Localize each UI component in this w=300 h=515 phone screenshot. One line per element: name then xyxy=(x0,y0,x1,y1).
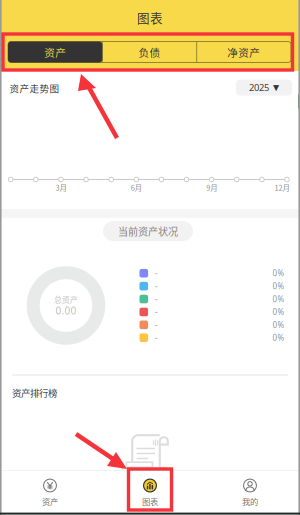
staticText: 资产排行榜 xyxy=(12,386,57,399)
staticText: 0% xyxy=(272,281,284,292)
staticText: 3月 xyxy=(55,182,66,193)
staticText: ▼ xyxy=(273,83,279,92)
staticText: 0% xyxy=(272,306,284,317)
staticText: 2025 xyxy=(249,81,269,94)
button[interactable]: 图表 xyxy=(100,475,200,511)
staticText: 资产走势图 xyxy=(9,81,59,95)
staticText: 资产 xyxy=(42,495,58,507)
button[interactable]: 负债 xyxy=(102,41,197,62)
staticText: - xyxy=(155,281,158,292)
staticText: 资产 xyxy=(44,44,66,60)
button[interactable]: 资产 xyxy=(8,41,102,62)
staticText: 负债 xyxy=(138,44,160,60)
staticText: - xyxy=(155,319,158,330)
staticText: 图表 xyxy=(142,495,158,507)
staticText: 9月 xyxy=(206,182,217,193)
staticText: 0% xyxy=(272,332,284,343)
staticText: - xyxy=(155,268,158,279)
staticText: 图表 xyxy=(137,8,163,26)
staticText: - xyxy=(155,294,158,304)
staticText: - xyxy=(155,306,158,317)
button[interactable]: 我的 xyxy=(200,475,300,511)
staticText: 0% xyxy=(272,268,284,279)
staticText: 净资产 xyxy=(227,44,260,60)
staticText: 0% xyxy=(272,294,284,304)
staticText: 0% xyxy=(272,319,284,330)
staticText: 我的 xyxy=(242,495,258,507)
staticText: 12月 xyxy=(274,182,289,193)
staticText: - xyxy=(155,332,158,343)
staticText: 总资产 xyxy=(54,294,78,305)
button[interactable]: 2025 xyxy=(236,79,292,95)
button[interactable]: 资产 xyxy=(0,475,100,511)
staticText: 当前资产状况 xyxy=(118,224,178,238)
staticText: 0.00 xyxy=(55,304,76,317)
button[interactable]: 净资产 xyxy=(197,41,291,62)
staticText: 6月 xyxy=(131,182,142,193)
